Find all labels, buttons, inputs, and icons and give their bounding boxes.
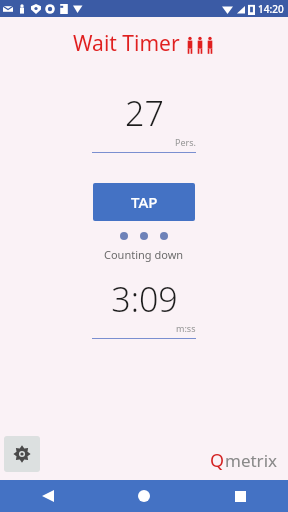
button[interactable]: Recent apps (192, 480, 288, 512)
button[interactable]: Settings (4, 436, 40, 472)
staticText: TAP (131, 192, 158, 212)
staticText: m:ss (176, 322, 196, 334)
staticText: Pers. (175, 136, 196, 148)
button[interactable]: Home (96, 480, 192, 512)
button[interactable]: Back (0, 480, 96, 512)
staticText: metrix (225, 449, 278, 472)
staticText: Q (210, 448, 225, 473)
staticText: Wait Timer (73, 29, 180, 58)
staticText: 3:09 (111, 276, 178, 322)
button[interactable]: TAP (93, 183, 195, 221)
staticText: 27 (125, 90, 164, 136)
staticText: 14:20 (258, 2, 284, 16)
staticText: Counting down (104, 247, 184, 262)
